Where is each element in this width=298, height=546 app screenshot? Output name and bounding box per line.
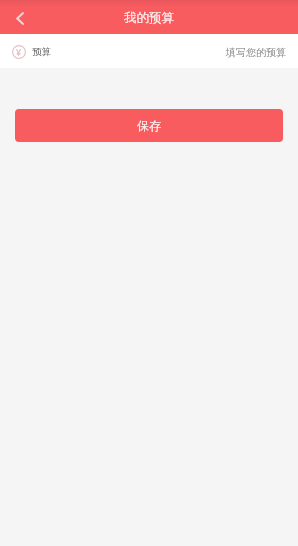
staticText: 填写您的预算 [226,46,286,59]
staticText: 我的预算 [124,10,174,26]
staticText: 保存 [137,118,161,133]
staticText: ¥ [16,46,22,58]
staticText: 预算 [32,46,51,58]
button[interactable]: 保存 [15,109,283,142]
button[interactable]: Back [0,0,38,34]
button[interactable]: ¥ [0,34,298,68]
